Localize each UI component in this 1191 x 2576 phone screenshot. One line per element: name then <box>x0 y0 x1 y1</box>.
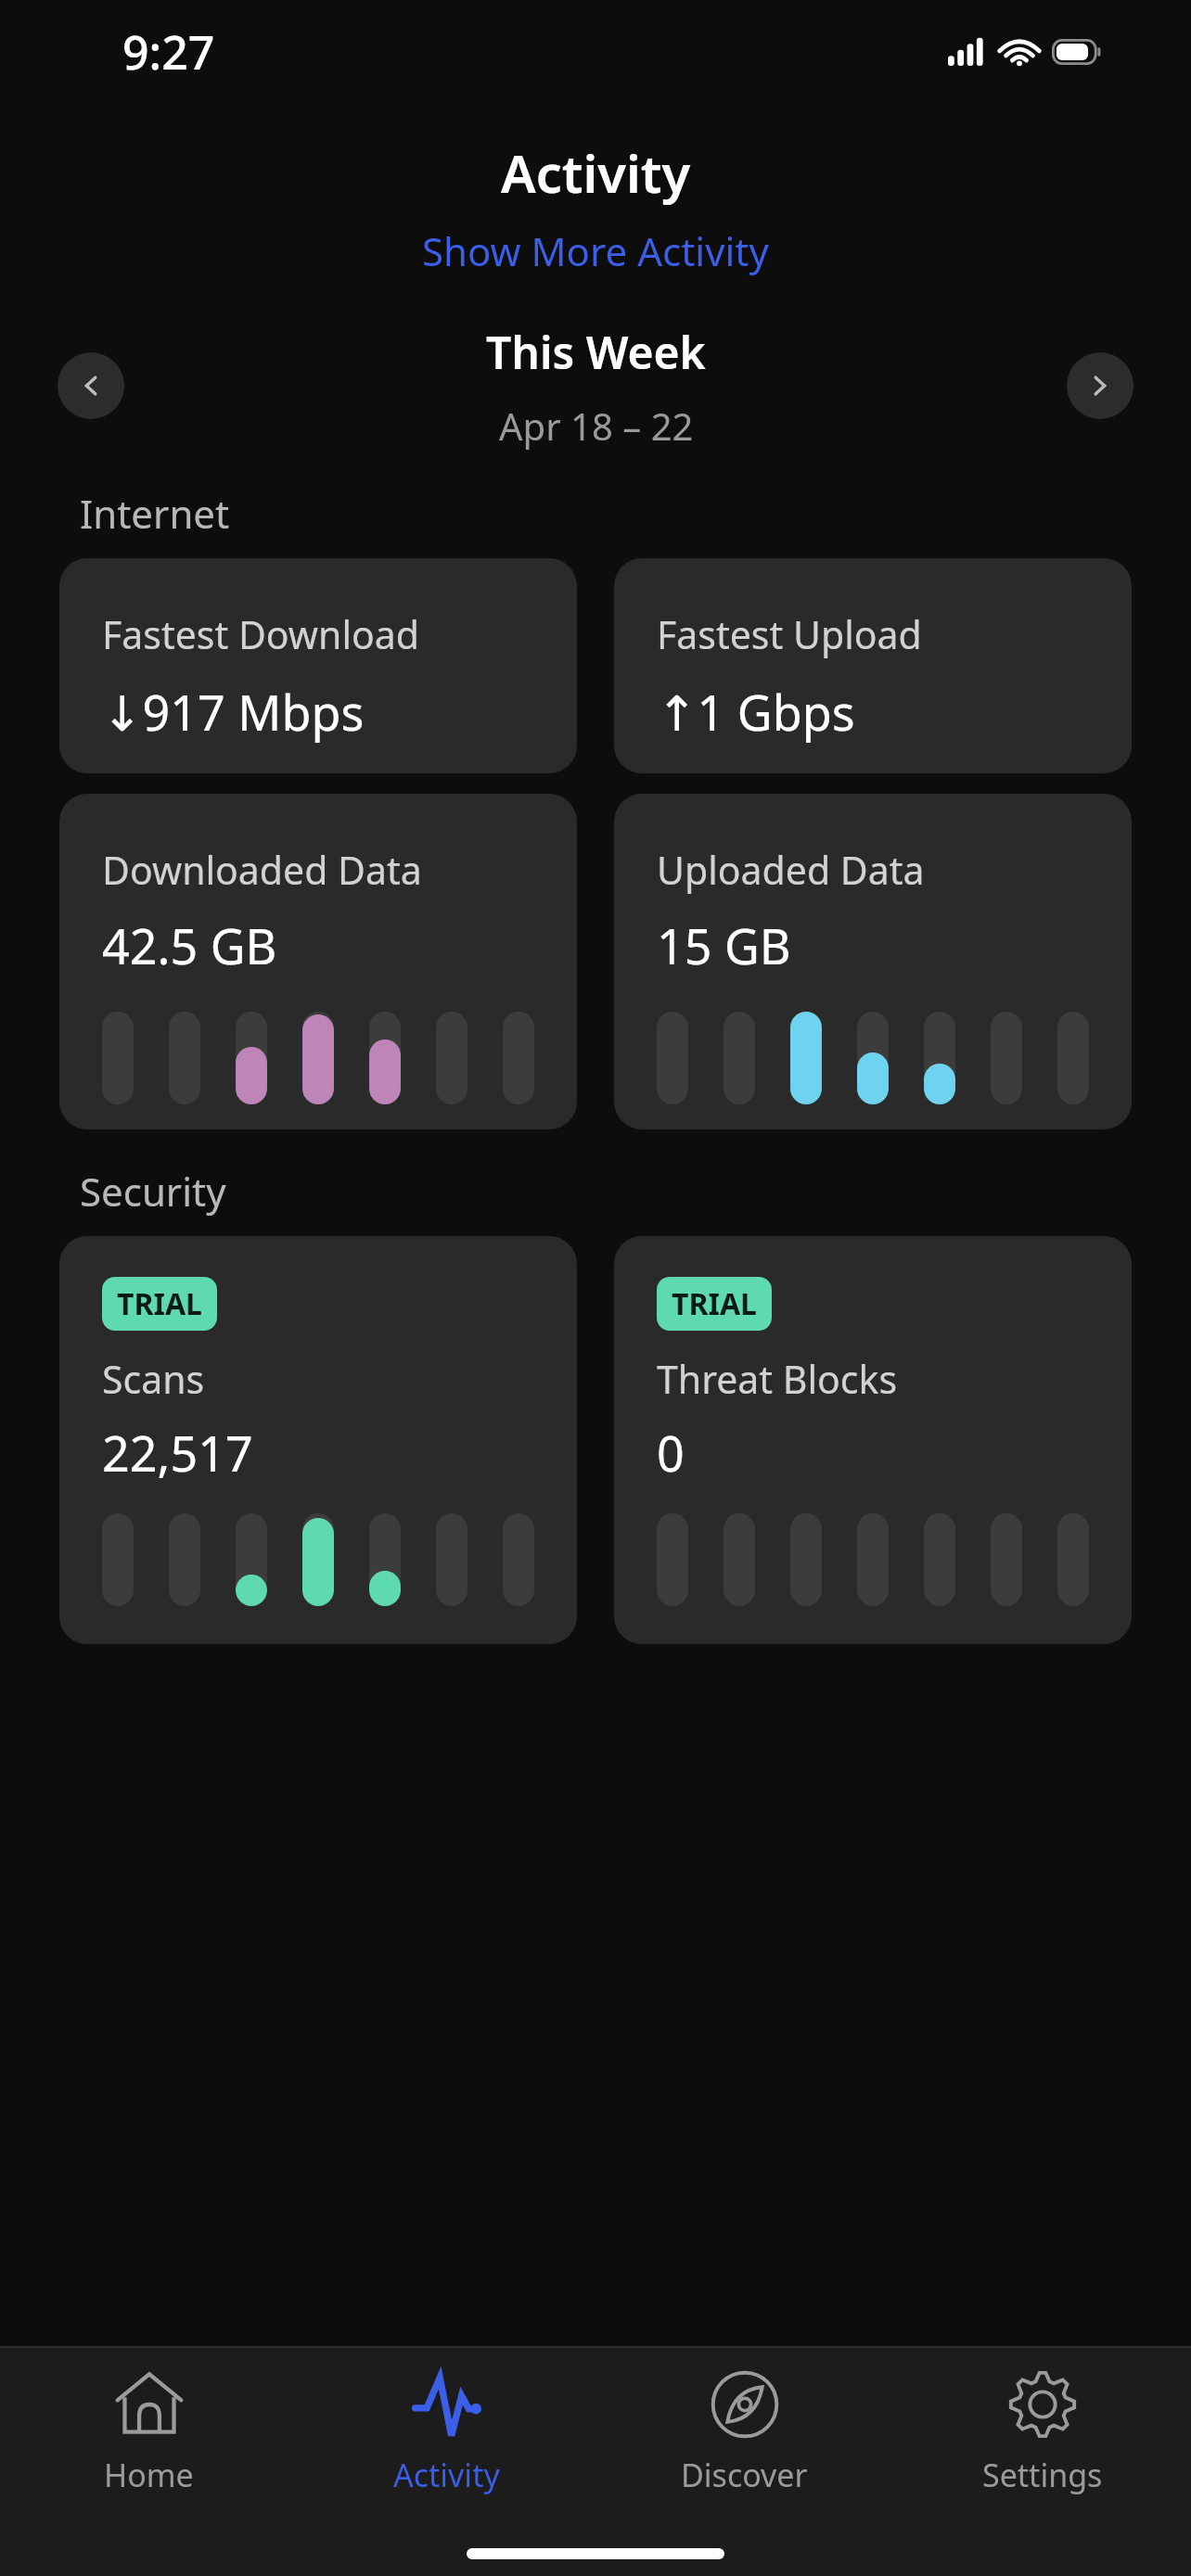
button[interactable]: Settings <box>893 2348 1191 2506</box>
staticText: Security <box>80 1165 1191 1218</box>
button[interactable]: Fastest Download <box>59 558 577 773</box>
staticText: Fastest Download <box>102 608 420 660</box>
staticText: Internet <box>80 487 1191 540</box>
staticText: Scans <box>102 1353 205 1405</box>
staticText: Discover <box>681 2454 808 2496</box>
staticText: This Week <box>486 322 706 382</box>
staticText: ↑1 Gbps <box>657 679 855 745</box>
button[interactable]: Next week <box>1067 352 1133 419</box>
staticText: Home <box>104 2454 194 2496</box>
staticText: 22,517 <box>102 1420 253 1486</box>
button[interactable]: Discover <box>595 2348 893 2506</box>
button[interactable]: Activity <box>298 2348 595 2506</box>
staticText: Uploaded Data <box>657 844 925 896</box>
button[interactable]: Show More Activity <box>415 221 776 281</box>
button[interactable]: TRIAL <box>614 1236 1132 1644</box>
staticText: ↓917 Mbps <box>102 679 365 745</box>
button[interactable]: Home <box>0 2348 298 2506</box>
staticText: 15 GB <box>657 912 791 978</box>
staticText: Activity <box>393 2454 500 2496</box>
staticText: Apr 18 – 22 <box>499 401 694 451</box>
button[interactable]: Previous week <box>58 352 124 419</box>
staticText: Show More Activity <box>422 224 769 277</box>
staticText: 42.5 GB <box>102 912 277 978</box>
button[interactable]: Fastest Upload <box>614 558 1132 773</box>
staticText: Fastest Upload <box>657 608 922 660</box>
staticText: Settings <box>982 2454 1103 2496</box>
button[interactable]: TRIAL <box>59 1236 577 1644</box>
staticText: TRIAL <box>117 1283 202 1324</box>
staticText: 0 <box>657 1420 685 1486</box>
staticText: 9:27 <box>122 20 215 83</box>
staticText: Threat Blocks <box>657 1353 898 1405</box>
staticText: Downloaded Data <box>102 844 422 896</box>
staticText: Activity <box>501 137 691 208</box>
button[interactable]: Downloaded Data <box>59 794 577 1129</box>
staticText: TRIAL <box>672 1283 757 1324</box>
button[interactable]: Uploaded Data <box>614 794 1132 1129</box>
